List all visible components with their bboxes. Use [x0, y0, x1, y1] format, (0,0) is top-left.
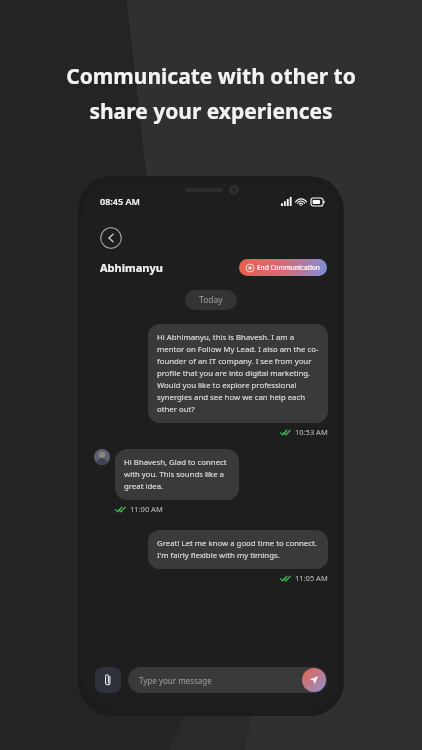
staticText: Great! Let me know a good time to connec…: [157, 538, 319, 561]
button[interactable]: Attach file: [95, 667, 121, 693]
staticText: 10:53 AM: [295, 427, 328, 437]
staticText: Type your message: [139, 675, 212, 686]
staticText: 11:00 AM: [130, 504, 163, 514]
staticText: Communicate with other to: [66, 62, 356, 91]
staticText: End Communication: [257, 263, 320, 272]
button[interactable]: End Communication: [239, 259, 327, 276]
button[interactable]: Hi Bhavesh, Glad to connect with you. Th…: [115, 449, 239, 500]
button[interactable]: Back: [100, 227, 122, 249]
button[interactable]: Hi Abhimanyu, this is Bhavesh. I am a me…: [148, 324, 328, 423]
staticText: 08:45 AM: [100, 195, 140, 207]
button[interactable]: Great! Let me know a good time to connec…: [148, 530, 328, 569]
staticText: share your experiences: [89, 97, 333, 126]
staticText: 11:05 AM: [295, 573, 328, 583]
button[interactable]: Send: [302, 668, 326, 692]
staticText: Hi Bhavesh, Glad to connect with you. Th…: [124, 457, 230, 492]
staticText: Abhimanyu: [100, 260, 163, 275]
staticText: Hi Abhimanyu, this is Bhavesh. I am a me…: [157, 332, 319, 415]
staticText: Today: [199, 294, 223, 306]
button[interactable]: Type your message: [128, 667, 327, 693]
